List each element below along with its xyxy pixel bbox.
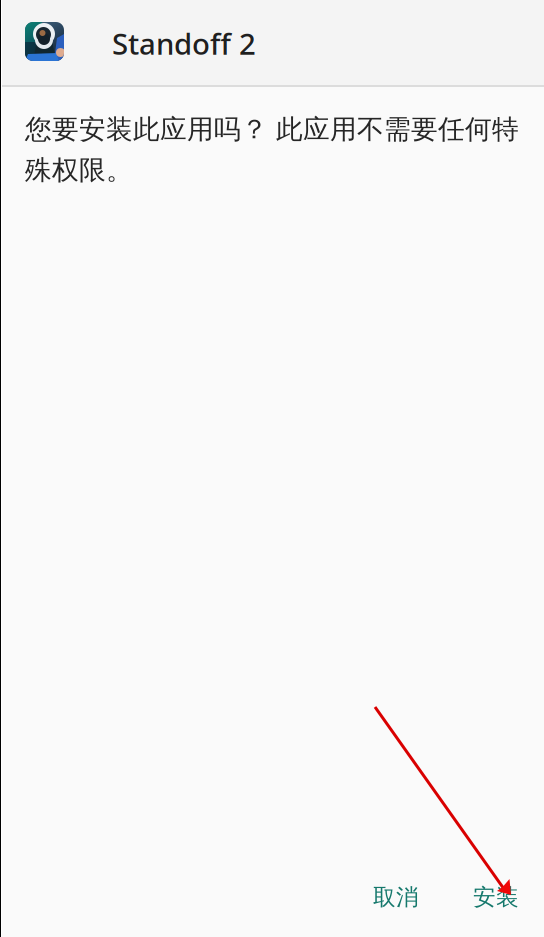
staticText: Standoff 2 — [112, 24, 256, 63]
button[interactable]: 安装 — [457, 871, 535, 923]
button[interactable]: 取消 — [357, 871, 435, 923]
staticText: 取消 — [373, 883, 419, 911]
staticText: 安装 — [473, 883, 519, 911]
staticText: 您要安装此应用吗？ 此应用不需要任何特殊权限。 — [25, 113, 519, 186]
